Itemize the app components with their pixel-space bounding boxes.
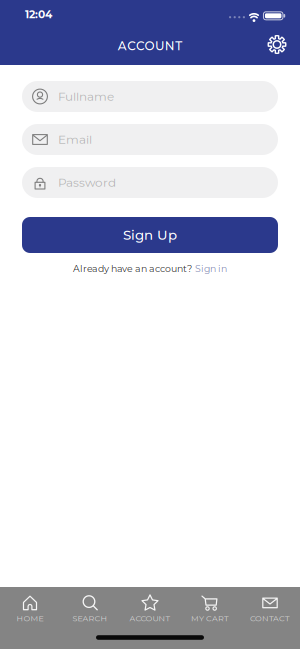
staticText: HOME [16,613,43,623]
staticText: Fullname [58,89,114,104]
staticText: Already have an account? [73,263,192,274]
staticText: MY CART [191,613,229,623]
staticText: CONTACT [250,613,290,623]
staticText: Email [58,132,92,147]
staticText: Sign in [195,263,227,274]
staticText: Password [58,175,116,190]
staticText: 12:04 [25,8,52,21]
staticText: ACCOUNT [118,39,182,53]
staticText: Sign Up [123,227,177,243]
staticText: ACCOUNT [129,613,170,623]
staticText: SEARCH [72,613,107,623]
